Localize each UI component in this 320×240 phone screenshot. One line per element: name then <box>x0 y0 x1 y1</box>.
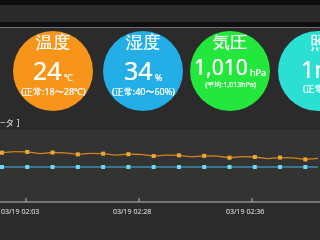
staticText: 03/19 02:36 <box>226 207 265 217</box>
staticText: 24 <box>33 53 62 87</box>
staticText: 34 <box>124 53 153 87</box>
staticText: 1,010 <box>194 53 248 82</box>
staticText: (正常:40〜60%) <box>112 85 175 97</box>
staticText: 湿度 <box>126 32 160 53</box>
staticText: 温度 <box>36 32 70 53</box>
button[interactable]: 湿度 <box>95 32 191 99</box>
button[interactable]: 気圧 <box>182 32 278 92</box>
staticText: ℃ <box>64 71 73 83</box>
staticText: (平均:1,013hPa) <box>205 80 256 90</box>
staticText: 03/19 02:03 <box>1 207 40 217</box>
staticText: 気圧 <box>213 32 247 53</box>
staticText: 照 <box>310 32 320 53</box>
staticText: 03/19 02:28 <box>113 207 152 217</box>
staticText: % <box>155 71 163 83</box>
button[interactable]: 照 <box>270 32 320 96</box>
staticText: (正常:18〜28℃) <box>21 85 86 97</box>
staticText: (正常50 <box>303 82 320 94</box>
staticText: 1m <box>301 53 320 84</box>
staticText: hPa <box>250 66 267 78</box>
staticText: −タ ] <box>0 116 20 128</box>
button[interactable]: −タ ] <box>0 114 320 240</box>
button[interactable]: 温度 <box>5 32 101 99</box>
